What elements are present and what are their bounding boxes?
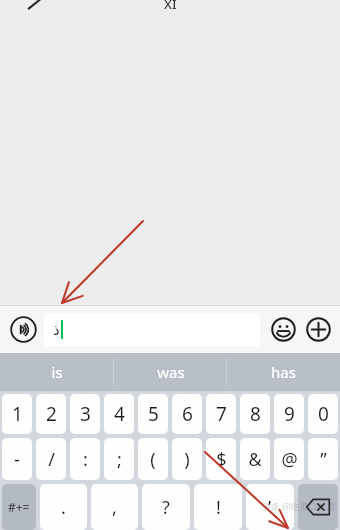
button[interactable]: ? — [142, 484, 190, 530]
button[interactable]: : — [70, 438, 100, 480]
staticText: ) — [184, 447, 190, 472]
staticText: . — [61, 495, 66, 520]
staticText: #+= — [8, 499, 30, 515]
button[interactable]: 0 — [308, 394, 338, 434]
button[interactable]: Backspace — [298, 484, 338, 530]
staticText: ’ — [268, 495, 272, 520]
button[interactable]: 1 — [2, 394, 32, 434]
button[interactable]: @ — [274, 438, 304, 480]
staticText: , — [112, 495, 117, 520]
button[interactable]: 4 — [104, 394, 134, 434]
button[interactable]: 7 — [206, 394, 236, 434]
other: Back — [26, 0, 44, 14]
staticText: 2 — [46, 401, 57, 427]
button[interactable]: ; — [104, 438, 134, 480]
button[interactable]: ! — [194, 484, 242, 530]
staticText: XI — [164, 0, 177, 9]
staticText: 7 — [216, 401, 227, 427]
button[interactable]: ” — [308, 438, 338, 480]
staticText: ” — [320, 447, 327, 472]
staticText: @ — [281, 447, 298, 472]
staticText: 8 — [250, 401, 261, 427]
staticText: ! — [216, 495, 221, 520]
button[interactable]: 2 — [36, 394, 66, 434]
button[interactable]: has — [227, 353, 340, 391]
button[interactable]: & — [240, 438, 270, 480]
button[interactable]: ) — [172, 438, 202, 480]
staticText: is — [51, 362, 63, 382]
button[interactable]: 6 — [172, 394, 202, 434]
button[interactable]: Emoji — [267, 313, 299, 345]
staticText: $ — [216, 447, 227, 472]
staticText: : — [83, 447, 88, 472]
button[interactable]: was — [114, 353, 227, 391]
button[interactable]: ’ — [246, 484, 294, 530]
button[interactable]: 3 — [70, 394, 100, 434]
staticText: / — [48, 447, 55, 472]
staticText: ; — [117, 447, 122, 472]
staticText: 头条 @吃瓜口味君 — [262, 500, 336, 512]
button[interactable]: - — [2, 438, 32, 480]
staticText: 9 — [284, 401, 295, 427]
button[interactable]: 8 — [240, 394, 270, 434]
staticText: & — [248, 447, 262, 472]
staticText: 6 — [182, 401, 193, 427]
button[interactable]: is — [0, 353, 114, 391]
button[interactable]: / — [36, 438, 66, 480]
staticText: ذ — [53, 321, 60, 338]
button[interactable]: $ — [206, 438, 236, 480]
button[interactable]: ذ — [44, 313, 260, 346]
button[interactable]: Voice input — [6, 312, 40, 346]
button[interactable]: 9 — [274, 394, 304, 434]
button[interactable]: . — [40, 484, 87, 530]
button[interactable]: ( — [138, 438, 168, 480]
button[interactable]: 5 — [138, 394, 168, 434]
staticText: 4 — [114, 401, 125, 427]
staticText: 5 — [148, 401, 159, 427]
staticText: has — [271, 362, 296, 382]
staticText: ( — [150, 447, 156, 472]
staticText: 0 — [318, 401, 329, 427]
staticText: 1 — [12, 401, 23, 427]
staticText: 3 — [80, 401, 91, 427]
button[interactable]: , — [91, 484, 138, 530]
staticText: ? — [162, 495, 170, 520]
staticText: was — [157, 362, 185, 382]
button[interactable]: #+= — [2, 484, 36, 530]
staticText: - — [14, 447, 20, 472]
button[interactable]: More — [302, 313, 334, 345]
